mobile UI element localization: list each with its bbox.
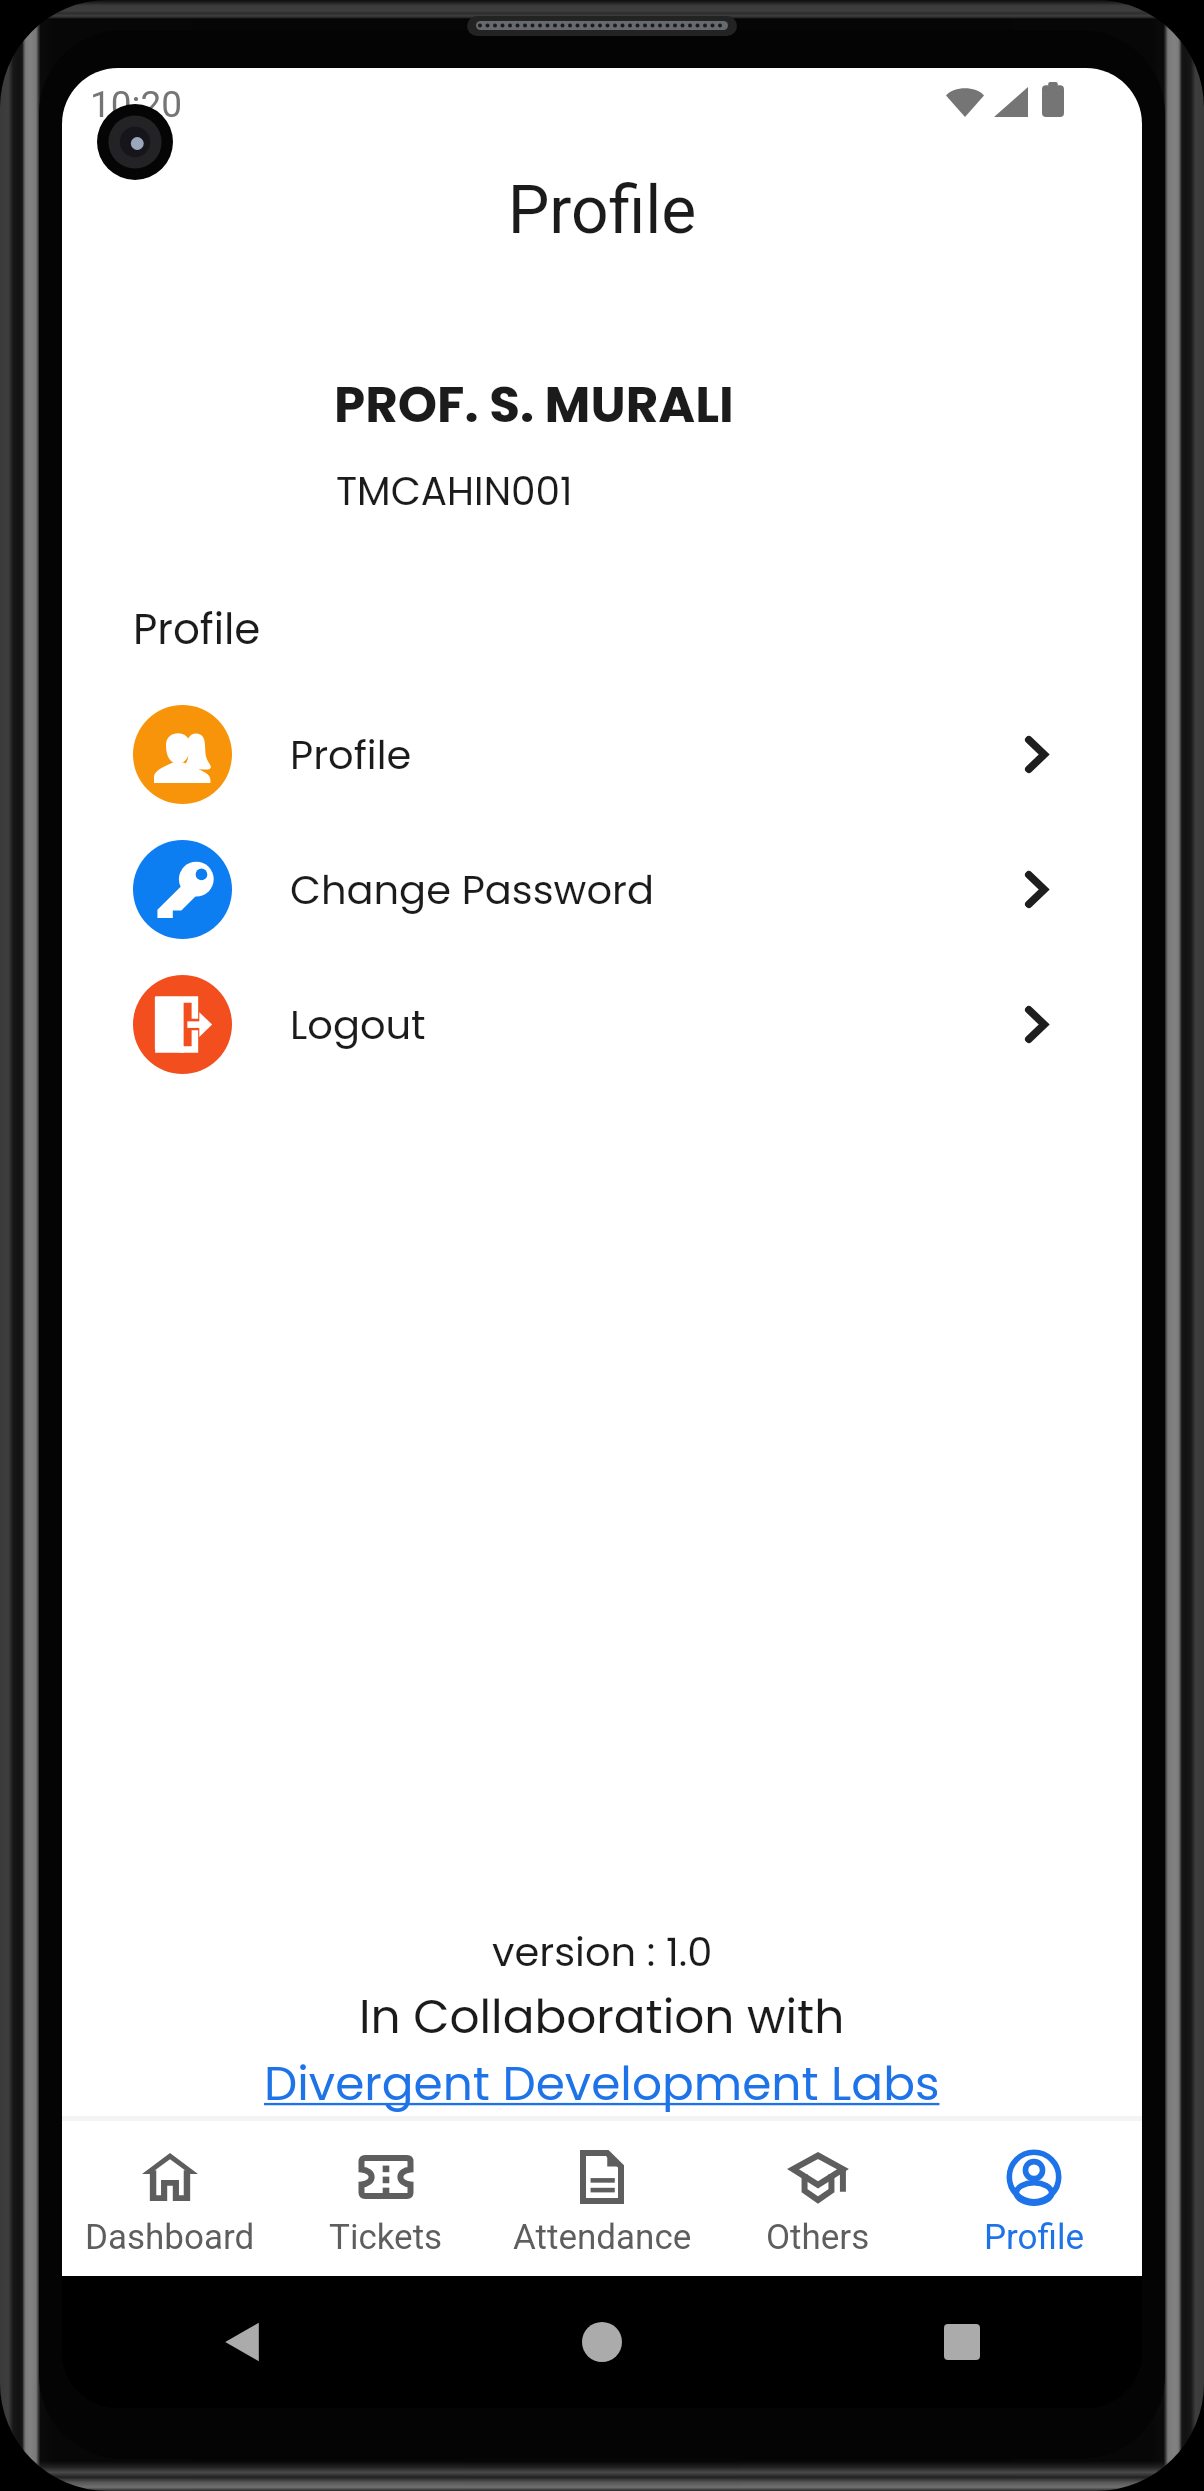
staticText: Logout <box>290 997 426 1053</box>
button[interactable]: Dashboard <box>62 2121 278 2276</box>
staticText: Profile <box>984 2217 1085 2258</box>
staticText: Dashboard <box>85 2217 255 2258</box>
staticText: In Collaboration with <box>359 1984 845 2050</box>
staticText: version : 1.0 <box>492 1924 713 1980</box>
button[interactable]: Attendance <box>494 2121 710 2276</box>
button[interactable]: Divergent Development Labs <box>264 2051 940 2117</box>
button[interactable]: Profile <box>926 2121 1142 2276</box>
staticText: Profile <box>133 600 261 659</box>
staticText: Profile <box>290 727 412 783</box>
button[interactable]: Profile <box>62 687 1142 822</box>
button[interactable]: Tickets <box>278 2121 494 2276</box>
staticText: 10:20 <box>90 83 183 126</box>
staticText: Tickets <box>329 2217 443 2258</box>
button[interactable]: Change Password <box>62 822 1142 957</box>
staticText: Change Password <box>290 862 654 918</box>
staticText: Profile <box>62 172 1142 249</box>
staticText: Others <box>766 2217 870 2258</box>
other: Home <box>582 2322 622 2362</box>
other: Recents <box>944 2324 980 2360</box>
staticText: Attendance <box>513 2217 692 2258</box>
staticText: TMCAHIN001 <box>336 464 573 519</box>
button[interactable]: Others <box>710 2121 926 2276</box>
button[interactable]: Logout <box>62 957 1142 1092</box>
staticText: PROF. S. MURALI <box>334 370 734 440</box>
other: Back <box>222 2320 262 2364</box>
